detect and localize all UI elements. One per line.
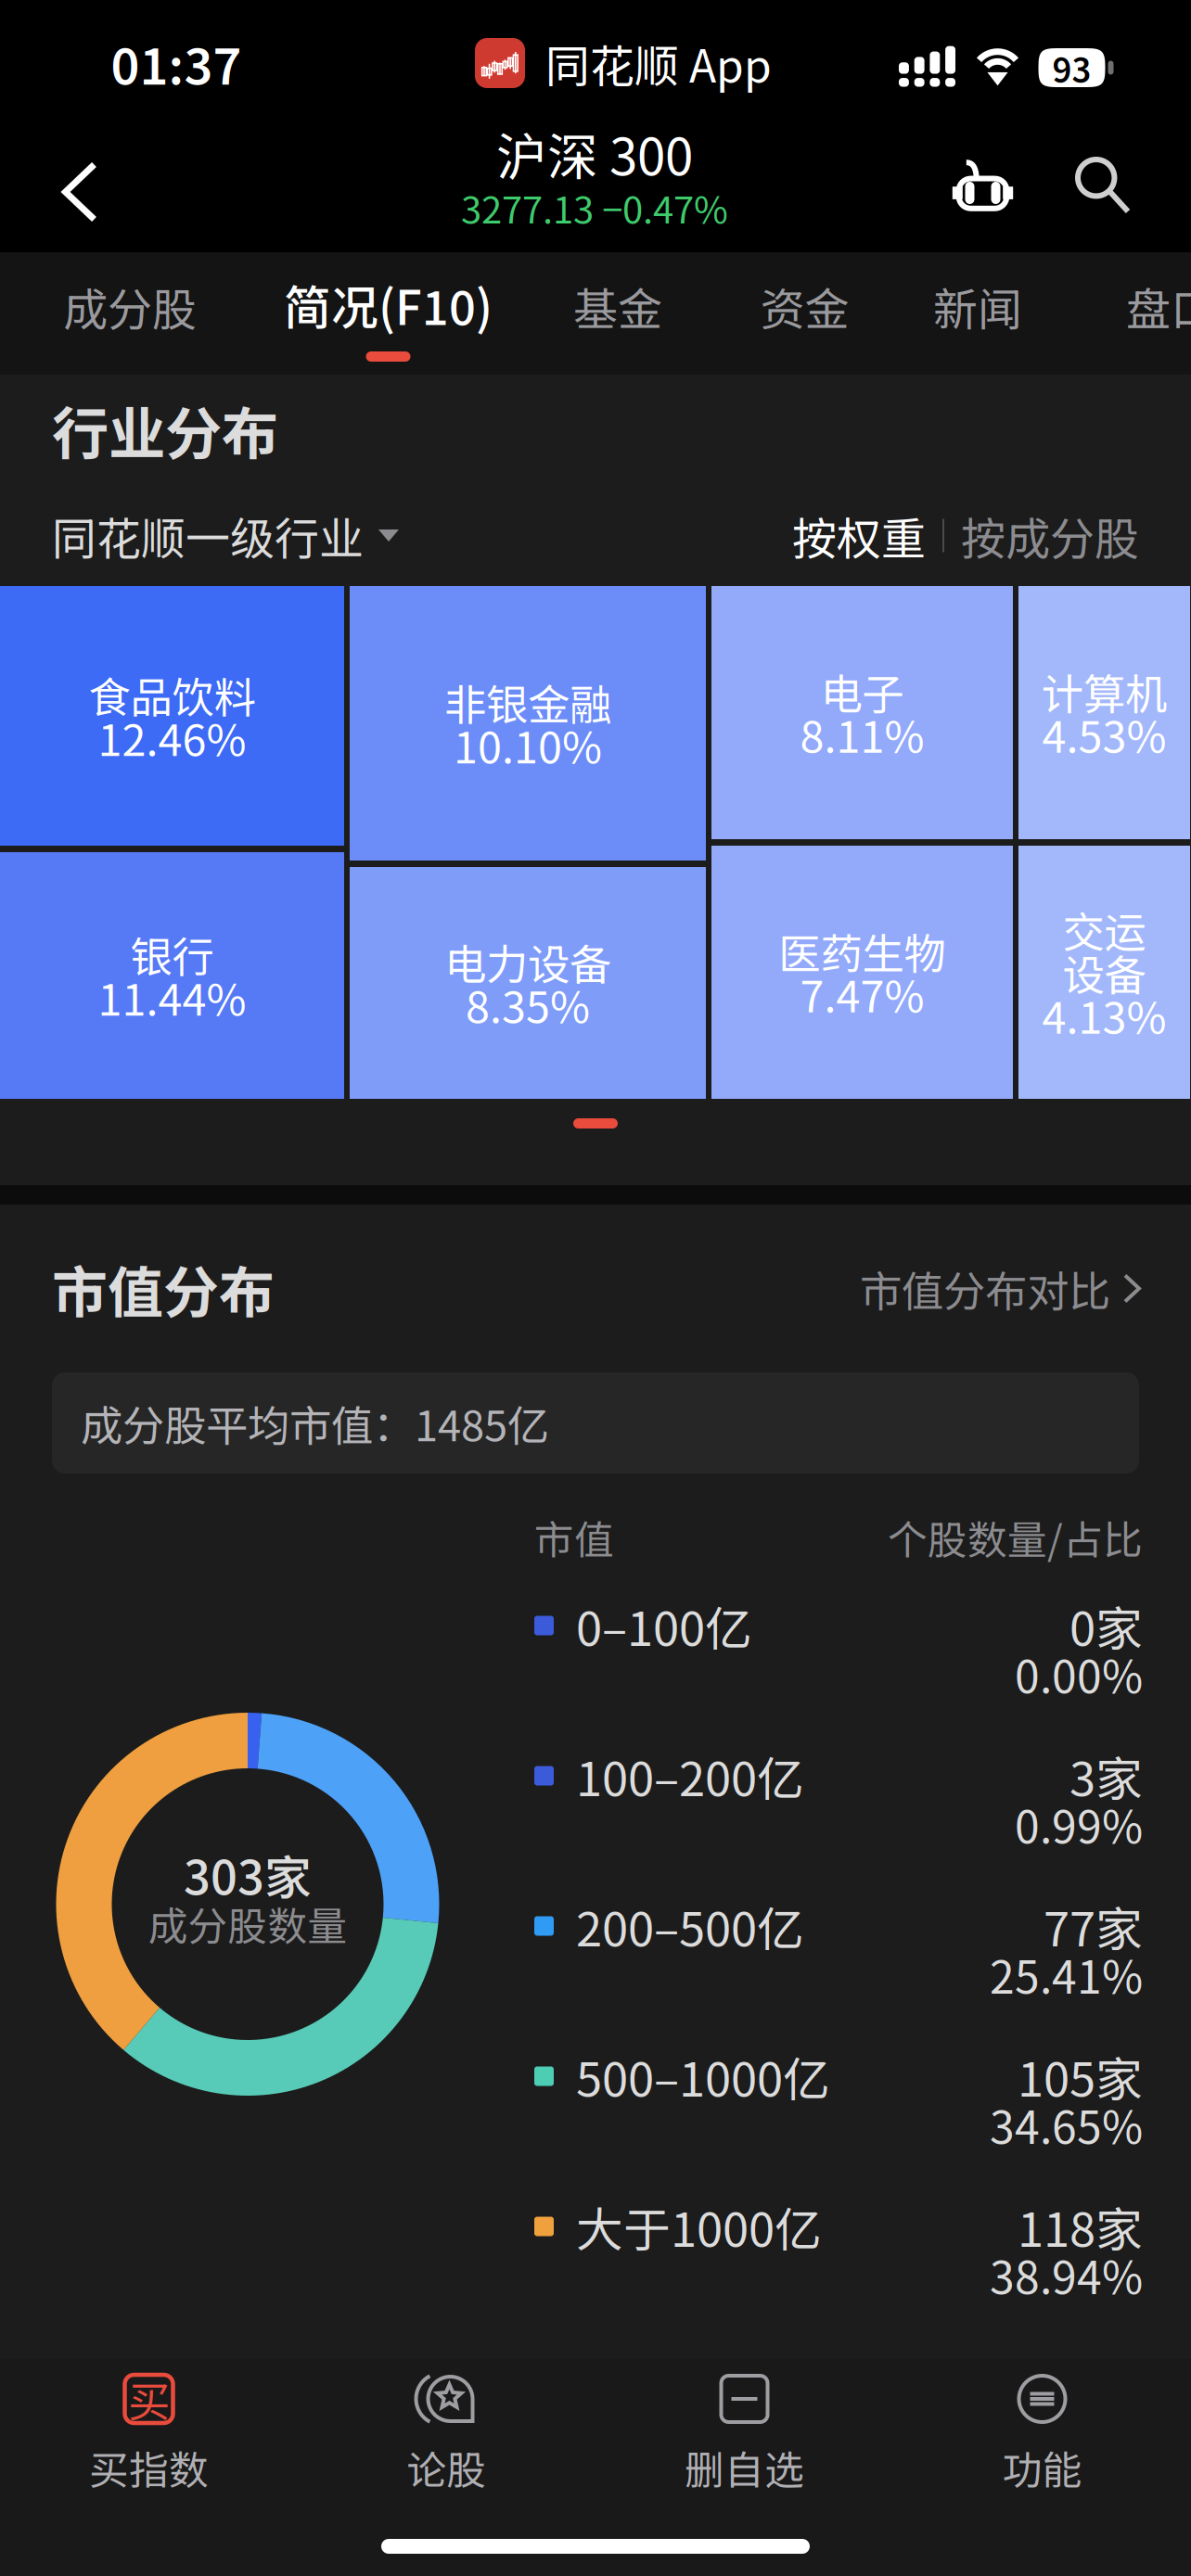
button[interactable]: 资金 [719, 252, 890, 375]
button[interactable]: 同花顺一级行业 [52, 503, 399, 568]
staticText: 删自选 [685, 2439, 804, 2496]
staticText: 设备 [1063, 942, 1146, 1003]
button[interactable]: 盘口 [1065, 252, 1191, 375]
button[interactable]: AI assistant [920, 119, 1045, 252]
staticText: 按成分股 [961, 503, 1139, 568]
button[interactable]: Back [0, 119, 145, 252]
staticText: 200–500亿 [576, 1892, 804, 1960]
button[interactable]: Search [1045, 119, 1191, 252]
staticText: 市值 [534, 1509, 614, 1566]
staticText: 34.65% [990, 2092, 1143, 2157]
staticText: 7.47% [800, 962, 924, 1025]
staticText: 0家 [1069, 1592, 1143, 1660]
staticText: 0.99% [1015, 1792, 1143, 1856]
staticText: 93 [1052, 43, 1091, 92]
staticText: 11.44% [98, 965, 246, 1028]
staticText: 500–1000亿 [576, 2042, 830, 2110]
staticText: 市值分布 [52, 1248, 275, 1329]
staticText: 计算机 [1042, 661, 1167, 722]
staticText: 100–200亿 [576, 1742, 804, 1810]
staticText: 303家 [184, 1840, 312, 1909]
button[interactable]: 删自选 [595, 2359, 893, 2531]
staticText: 基金 [573, 274, 662, 338]
staticText: 买指数 [89, 2439, 209, 2496]
staticText: 8.35% [466, 973, 590, 1036]
button[interactable]: 按成分股 [944, 503, 1139, 568]
staticText: 8.11% [800, 703, 924, 765]
staticText: 4.53% [1042, 703, 1166, 765]
button[interactable]: 市值分布对比 [860, 1258, 1139, 1319]
staticText: 成分股平均市值：1485亿 [81, 1393, 549, 1453]
button[interactable]: 成分股 [0, 252, 260, 375]
staticText: 大于1000亿 [576, 2192, 822, 2260]
staticText: 电力设备 [444, 931, 611, 992]
staticText: 论股 [407, 2439, 487, 2496]
button[interactable]: 买 [0, 2359, 298, 2531]
staticText: 行业分布 [52, 389, 278, 471]
staticText: 银行 [130, 924, 214, 985]
staticText: 个股数量/占比 [888, 1509, 1143, 1566]
staticText: 资金 [760, 274, 849, 338]
staticText: 简况(F10) [284, 270, 493, 338]
staticText: 交运 [1063, 899, 1146, 960]
staticText: 同花顺一级行业 [52, 503, 364, 568]
staticText: 25.41% [990, 1942, 1143, 2006]
button[interactable]: 论股 [298, 2359, 595, 2531]
staticText: 12.46% [98, 706, 246, 769]
staticText: 10.10% [454, 713, 602, 776]
staticText: 电子 [820, 661, 904, 722]
staticText: 3家 [1069, 1742, 1143, 1810]
staticText: 4.13% [1042, 984, 1166, 1046]
staticText: 市值分布对比 [860, 1258, 1110, 1319]
staticText: 功能 [1002, 2439, 1082, 2496]
staticText: 3277.13 −0.47% [461, 180, 728, 234]
staticText: 盘口 [1126, 274, 1191, 338]
button[interactable]: 按权重 [792, 503, 942, 568]
staticText: 0.00% [1015, 1641, 1143, 1706]
staticText: 77家 [1044, 1892, 1143, 1960]
staticText: 0–100亿 [576, 1592, 752, 1660]
staticText: 118家 [1018, 2192, 1143, 2260]
staticText: 同花顺 App [545, 31, 772, 95]
staticText: 沪深 300 [496, 117, 693, 190]
button[interactable]: 功能 [893, 2359, 1191, 2531]
staticText: 38.94% [990, 2242, 1143, 2307]
staticText: 成分股数量 [148, 1895, 347, 1952]
staticText: 食品饮料 [89, 664, 256, 725]
staticText: 按权重 [792, 503, 926, 568]
staticText: 105家 [1018, 2042, 1143, 2110]
staticText: 01:37 [111, 27, 242, 99]
button[interactable]: 新闻 [890, 252, 1065, 375]
button[interactable]: 基金 [517, 252, 719, 375]
staticText: 非银金融 [444, 672, 611, 732]
staticText: 买 [128, 2368, 170, 2429]
staticText: 新闻 [933, 274, 1022, 338]
staticText: 成分股 [63, 274, 197, 338]
button[interactable]: 简况(F10) [260, 252, 517, 375]
staticText: 医药生物 [779, 921, 946, 981]
